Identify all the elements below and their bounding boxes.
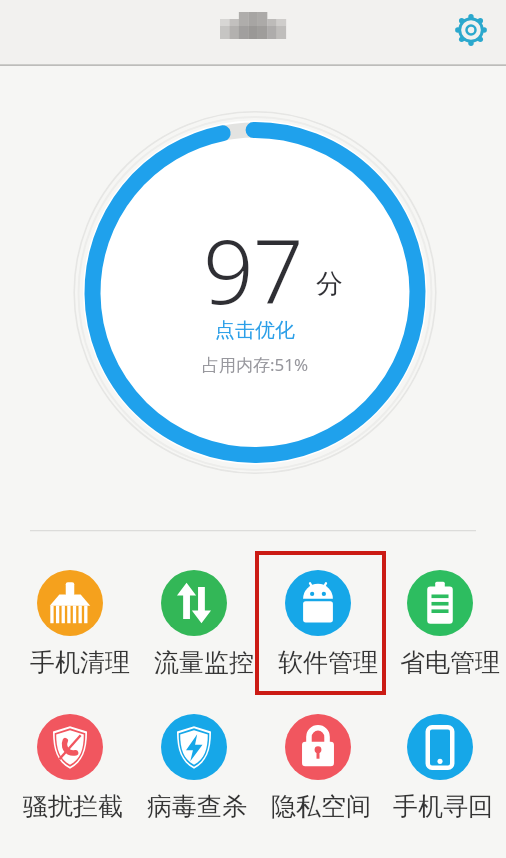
button[interactable]: 骚扰拦截 (8, 714, 132, 822)
button[interactable]: 流量监控 (132, 570, 256, 678)
button[interactable]: 手机寻回 (378, 714, 502, 822)
staticText: 软件管理 (266, 647, 390, 678)
staticText: 省电管理 (388, 647, 506, 678)
button[interactable]: 点击优化 (175, 315, 335, 346)
staticText: 占用内存:51% (202, 353, 309, 376)
button[interactable]: 病毒查杀 (132, 714, 256, 822)
button[interactable] (449, 8, 493, 52)
button[interactable]: 软件管理 (256, 570, 380, 678)
staticText: 97 (203, 209, 303, 321)
button[interactable]: 省电管理 (378, 570, 502, 678)
staticText: 手机清理 (18, 647, 142, 678)
staticText: 点击优化 (215, 318, 295, 343)
staticText: 手机寻回 (381, 791, 505, 822)
staticText: 流量监控 (142, 647, 266, 678)
staticText: 病毒查杀 (135, 791, 259, 822)
staticText: 骚扰拦截 (11, 791, 135, 822)
button[interactable]: 隐私空间 (256, 714, 380, 822)
staticText: 隐私空间 (259, 791, 383, 822)
staticText: 分 (316, 267, 343, 299)
button[interactable]: 手机清理 (8, 570, 132, 678)
